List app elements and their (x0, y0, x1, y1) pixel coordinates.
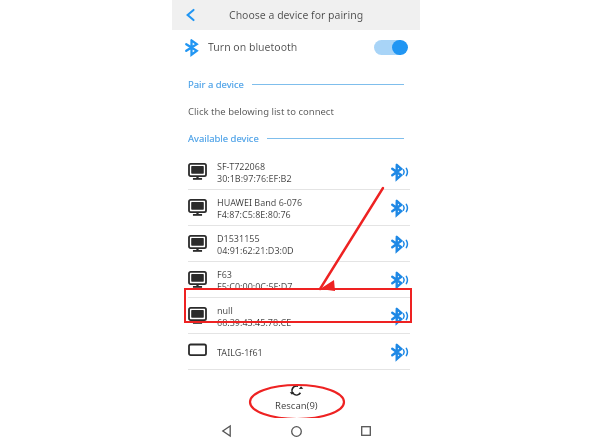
other: Connect (390, 164, 406, 180)
button[interactable]: F63 (172, 262, 420, 297)
staticText: F4:87:C5:8E:80:76 (217, 208, 291, 220)
other: Connect (390, 200, 406, 216)
staticText: 30:1B:97:76:EF:B2 (217, 172, 292, 184)
staticText: Turn on bluetooth (208, 40, 298, 54)
staticText: Choose a device for pairing (229, 8, 364, 22)
staticText: Click the belowing list to connect (188, 105, 334, 118)
button[interactable]: Recents (351, 418, 381, 444)
other: Rescan (289, 383, 304, 398)
staticText: F63 (217, 268, 232, 280)
other: Connect (390, 344, 406, 360)
other: Connect (390, 272, 406, 288)
button[interactable]: Bluetooth on (374, 40, 408, 55)
staticText: D1531155 (217, 232, 260, 244)
staticText: Available device (188, 132, 259, 145)
staticText: Rescan(9) (275, 399, 318, 412)
staticText: TAILG-1f61 (217, 346, 263, 358)
button[interactable]: D1531155 (172, 226, 420, 261)
staticText: SF-T722068 (217, 160, 266, 172)
other: Connect (390, 236, 406, 252)
other: Connect (390, 308, 406, 324)
staticText: null (217, 304, 233, 316)
staticText: 04:91:62:21:D3:0D (217, 244, 294, 256)
staticText: HUAWEI Band 6-076 (217, 196, 303, 208)
staticText: 68:39:43:45:78:CE (217, 316, 292, 328)
button[interactable]: HUAWEI Band 6-076 (172, 190, 420, 225)
button[interactable]: Back (212, 418, 242, 444)
button[interactable]: SF-T722068 (172, 154, 420, 189)
button[interactable]: Home (281, 418, 311, 444)
button[interactable]: TAILG-1f61 (172, 334, 420, 369)
button[interactable]: null (172, 298, 420, 333)
staticText: Pair a device (188, 78, 244, 91)
button[interactable]: Turn on bluetooth (172, 30, 420, 64)
button[interactable]: Back (180, 4, 202, 26)
button[interactable]: Rescan (275, 383, 318, 412)
staticText: F5:C0:00:0C:5F:D7 (217, 280, 293, 292)
